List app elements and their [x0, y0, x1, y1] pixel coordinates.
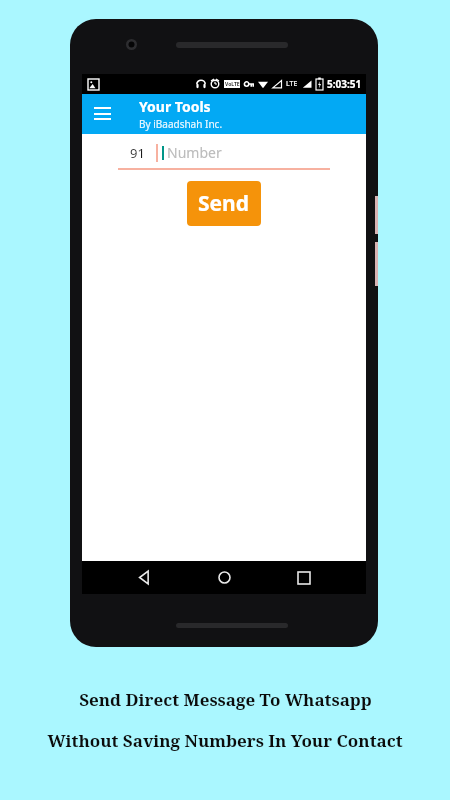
staticText: 91 [130, 144, 145, 162]
staticText: VoLTE [225, 81, 240, 88]
staticText: Send [198, 189, 250, 218]
staticText: 5:03:51 [327, 77, 362, 91]
button[interactable]: Number [167, 143, 330, 162]
button[interactable]: Open navigation menu [82, 94, 122, 134]
button[interactable]: Home [206, 561, 242, 594]
staticText: Number [167, 143, 222, 162]
button[interactable]: 91 [118, 144, 156, 162]
staticText: Without Saving Numbers In Your Contact [47, 729, 403, 752]
button[interactable]: Send [187, 181, 261, 226]
staticText: Send Direct Message To Whatsapp [79, 688, 372, 711]
button[interactable]: Back [126, 561, 162, 594]
button[interactable]: Recent apps [286, 561, 322, 594]
staticText: Your Tools [139, 97, 211, 116]
staticText: By iBaadshah Inc. [139, 117, 223, 131]
staticText: LTE [286, 79, 298, 89]
